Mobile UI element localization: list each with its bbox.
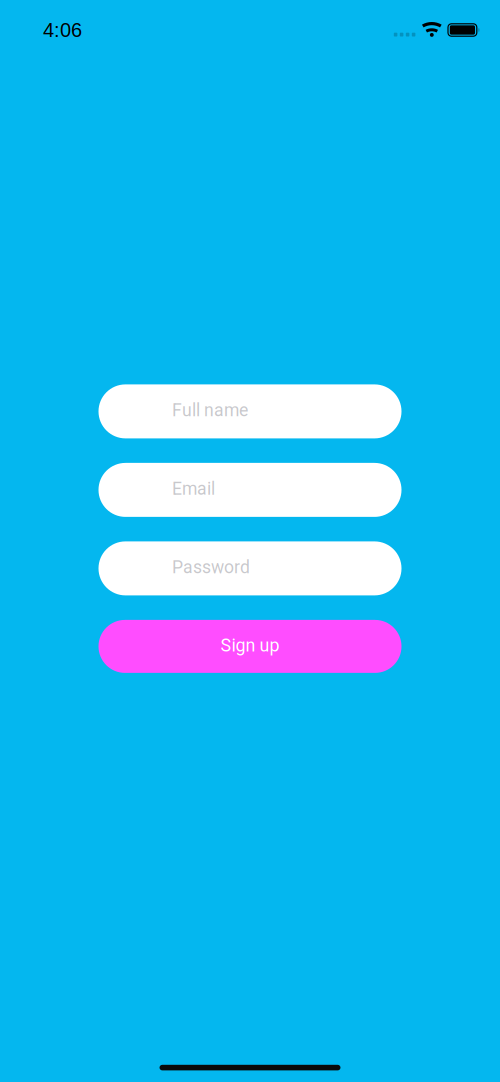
button[interactable]: Email [98,463,401,517]
staticText: 4:06 [43,19,82,41]
staticText: Sign up [220,635,279,656]
button[interactable]: Sign up [98,620,401,673]
staticText: Password [172,557,250,577]
button[interactable]: Password [98,541,401,595]
staticText: Email [172,478,215,499]
staticText: Full name [172,400,248,420]
button[interactable]: Full name [98,384,401,438]
